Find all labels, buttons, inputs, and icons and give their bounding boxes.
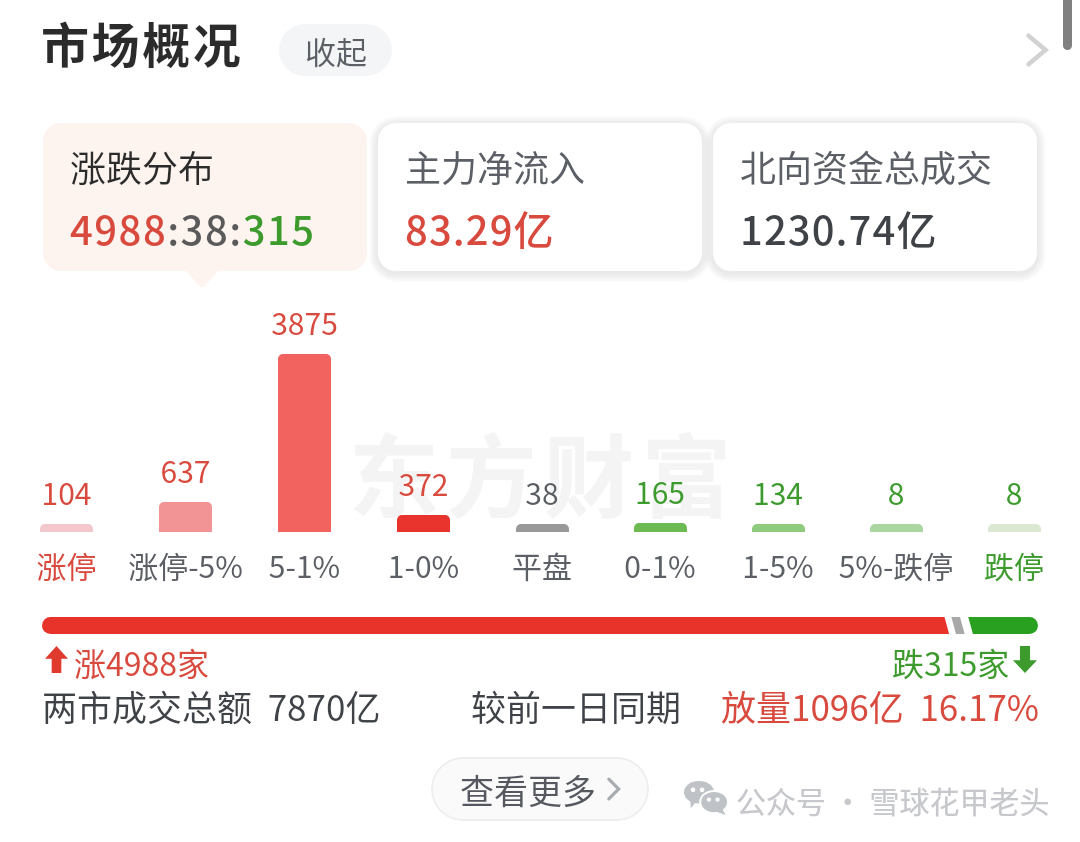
- staticText: 165: [601, 469, 719, 512]
- staticText: 0-1%: [601, 543, 719, 586]
- staticText: 涨4988家: [74, 639, 210, 685]
- staticText: 1-0%: [364, 543, 483, 586]
- staticText: 1-5%: [719, 543, 837, 586]
- staticText: 637: [126, 448, 245, 491]
- staticText: 主力净流入: [405, 140, 586, 192]
- staticText: 北向资金总成交: [740, 140, 993, 192]
- staticText: 平盘: [483, 543, 601, 586]
- staticText: 市场概况: [41, 7, 244, 77]
- staticText: 跌315家: [892, 639, 1010, 685]
- staticText: 1230.74亿: [740, 199, 938, 257]
- button[interactable]: 查看更多: [431, 757, 649, 821]
- staticText: 8: [955, 470, 1073, 513]
- staticText: 跌停: [955, 543, 1073, 586]
- staticText: 372: [364, 461, 483, 504]
- staticText: 较前一日同期: [471, 680, 682, 731]
- button[interactable]: 主力净流入: [378, 123, 702, 271]
- staticText: 公众号 · 雪球花甲老头: [736, 778, 1050, 821]
- staticText: 38: [483, 470, 601, 513]
- staticText: 134: [719, 470, 837, 513]
- staticText: 涨停: [7, 543, 126, 586]
- staticText: 4988:38:315: [70, 199, 316, 257]
- staticText: 收起: [305, 28, 367, 73]
- staticText: 放量1096亿 16.17%: [721, 680, 1040, 731]
- staticText: 涨跌分布: [70, 140, 215, 192]
- staticText: 8: [837, 470, 955, 513]
- staticText: 5%-跌停: [837, 543, 955, 586]
- staticText: 83.29亿: [405, 199, 555, 257]
- staticText: 3875: [245, 300, 364, 343]
- staticText: 5-1%: [245, 543, 364, 586]
- staticText: 104: [7, 470, 126, 513]
- button[interactable]: 展开更多: [1011, 25, 1061, 75]
- button[interactable]: 收起: [279, 24, 392, 76]
- staticText: 查看更多: [460, 765, 596, 814]
- staticText: 东方财富: [349, 406, 739, 536]
- staticText: 涨停-5%: [126, 543, 245, 586]
- staticText: 两市成交总额 7870亿: [42, 680, 381, 731]
- button[interactable]: 北向资金总成交: [713, 123, 1037, 271]
- button[interactable]: 涨跌分布: [43, 123, 367, 271]
